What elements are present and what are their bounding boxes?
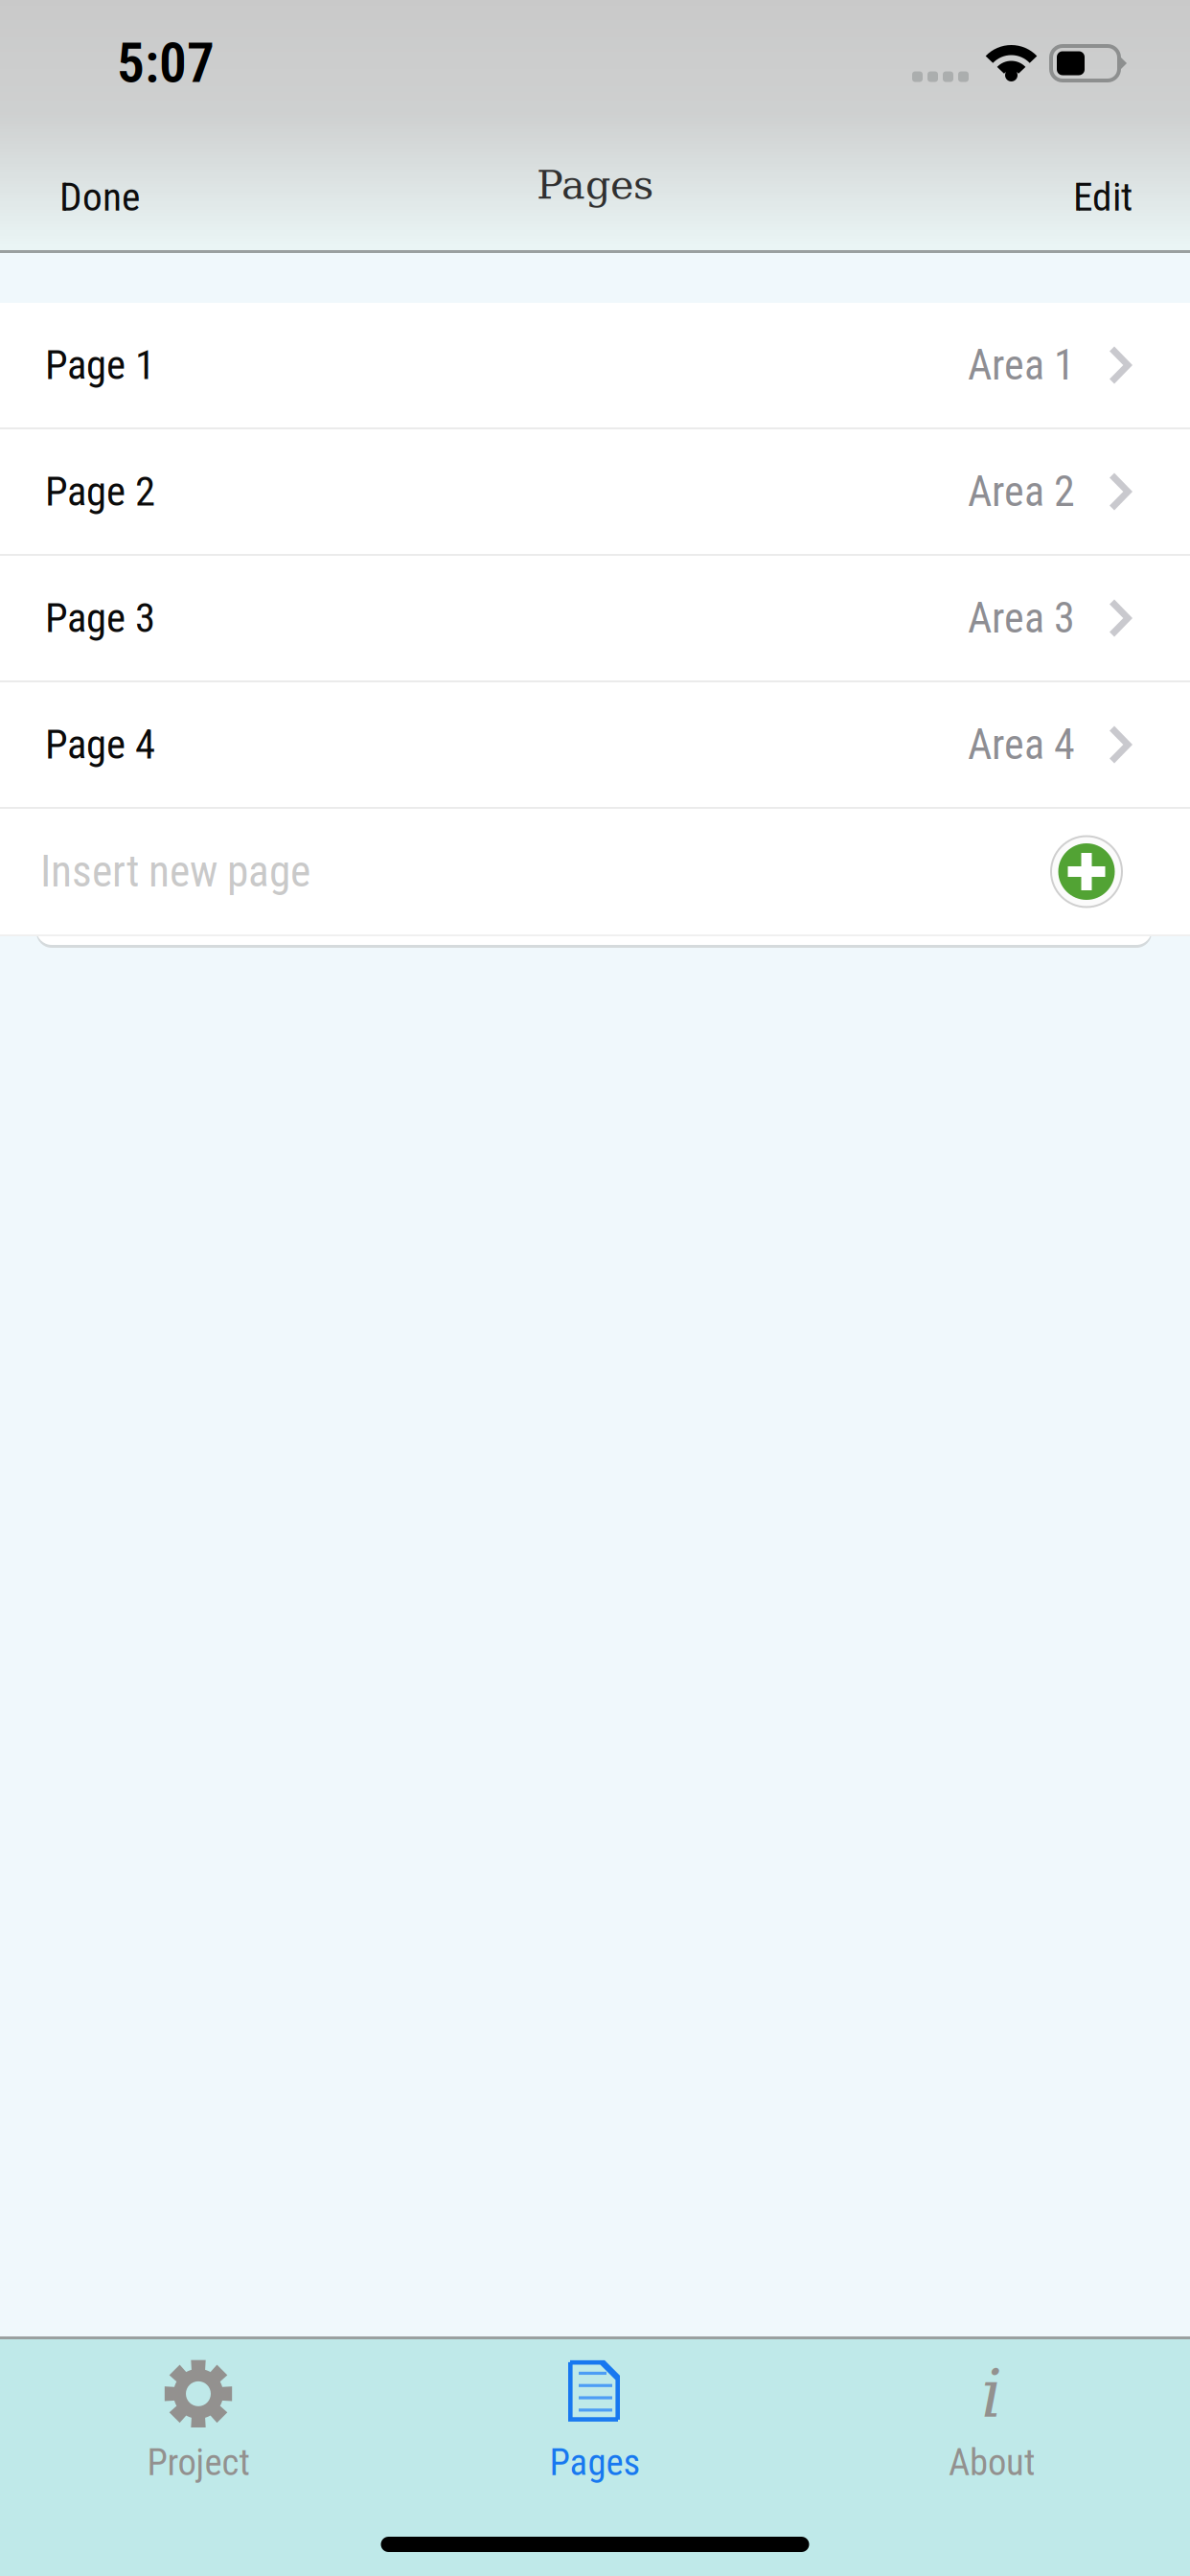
staticText: Pages — [549, 2441, 641, 2484]
button[interactable]: Page 1 — [0, 303, 1190, 429]
button[interactable]: i — [793, 2339, 1190, 2483]
button[interactable]: Edit — [1039, 139, 1190, 237]
staticText: Area 1 — [968, 340, 1075, 390]
button[interactable]: Page 4 — [0, 682, 1190, 809]
staticText: Page 2 — [45, 468, 155, 516]
staticText: Insert new page — [40, 846, 310, 897]
staticText: Area 2 — [968, 467, 1075, 516]
button[interactable]: Done — [0, 139, 174, 237]
staticText: Area 3 — [968, 593, 1075, 643]
button[interactable]: Page 3 — [0, 556, 1190, 682]
staticText: Edit — [1073, 174, 1133, 220]
button[interactable]: Insert new page — [1050, 835, 1123, 908]
staticText: i — [981, 2355, 1002, 2432]
button[interactable]: Pages — [397, 2339, 793, 2483]
staticText: Area 4 — [968, 720, 1075, 769]
button[interactable]: Project — [0, 2339, 397, 2483]
staticText: Pages — [537, 162, 653, 208]
staticText: About — [949, 2441, 1035, 2484]
staticText: 5:07 — [117, 31, 215, 95]
staticText: Done — [59, 174, 140, 220]
staticText: Page 1 — [45, 341, 155, 389]
staticText: Project — [147, 2441, 250, 2484]
staticText: Page 3 — [45, 594, 155, 642]
staticText: Page 4 — [45, 721, 155, 769]
button[interactable]: Page 2 — [0, 429, 1190, 556]
